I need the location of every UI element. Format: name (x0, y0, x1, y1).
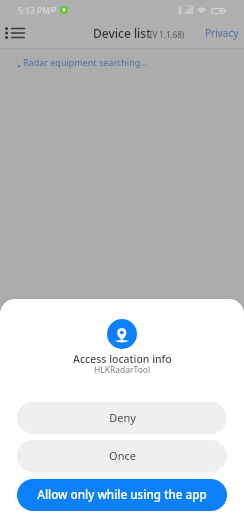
button[interactable]: Privacy (205, 26, 239, 40)
button[interactable]: Once (17, 440, 227, 472)
staticText: Privacy (205, 26, 239, 40)
staticText: HLKRadarTool (94, 364, 151, 376)
staticText: Once (109, 448, 136, 463)
staticText: Allow only while using the app (37, 486, 207, 502)
staticText: (V 1.1.68) (150, 29, 185, 40)
staticText: Device list (93, 25, 151, 41)
button[interactable]: Deny (17, 402, 227, 434)
staticText: 5:13 PM (18, 5, 50, 17)
staticText: Radar equipment searching... (23, 56, 148, 68)
button[interactable]: Allow only while using the app (17, 479, 227, 511)
staticText: Access location info (73, 352, 172, 366)
staticText: Deny (109, 410, 136, 425)
button[interactable]: Menu (0, 18, 30, 48)
